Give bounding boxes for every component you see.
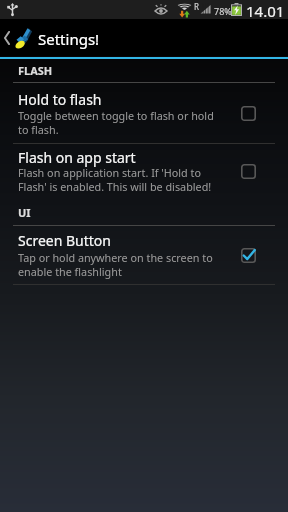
staticText: Tap or hold anywhere on the screen to en…	[18, 250, 218, 279]
staticText: 14.01	[246, 1, 285, 20]
button[interactable]: Screen Button	[0, 226, 288, 283]
staticText: Hold to flash	[18, 90, 102, 109]
button[interactable]: Flash on app start	[0, 144, 288, 198]
staticText: Settings!	[38, 29, 100, 49]
staticText: Flash on application start. If 'Hold to …	[18, 165, 218, 194]
staticText: FLASH	[18, 63, 53, 78]
button[interactable]: Navigate up	[0, 19, 34, 56]
staticText: 78%	[214, 5, 232, 17]
staticText: Screen Button	[18, 231, 111, 250]
staticText: UI	[18, 205, 31, 220]
staticText: Toggle between toggle to flash or hold t…	[18, 108, 218, 137]
staticText: R	[194, 1, 199, 12]
staticText: Flash on app start	[18, 148, 136, 167]
button[interactable]: Hold to flash	[0, 84, 288, 142]
